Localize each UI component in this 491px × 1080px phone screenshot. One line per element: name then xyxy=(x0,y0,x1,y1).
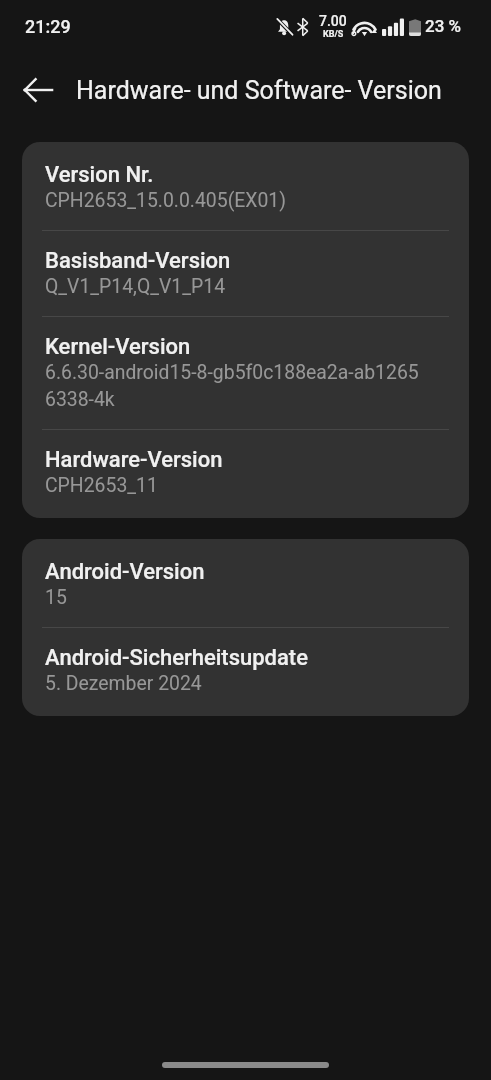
button[interactable]: Back xyxy=(10,62,66,118)
staticText: Android-Sicherheitsupdate xyxy=(45,645,308,671)
staticText: Hardware- und Software- Version xyxy=(76,76,442,105)
button[interactable]: Version Nr. xyxy=(22,145,469,231)
staticText: 23 % xyxy=(425,16,462,36)
staticText: Hardware-Version xyxy=(45,447,223,473)
staticText: KB/S xyxy=(323,29,344,40)
button[interactable]: Basisband-Version xyxy=(22,231,469,317)
staticText: 6.6.30-android15-8-gb5f0c188ea2a-ab1265 … xyxy=(45,361,419,411)
staticText: Version Nr. xyxy=(45,162,154,188)
staticText: Android-Version xyxy=(45,559,205,585)
button[interactable]: Kernel-Version xyxy=(22,317,469,430)
button[interactable]: Android-Version xyxy=(22,542,469,628)
staticText: 15 xyxy=(45,586,67,609)
button[interactable]: Hardware-Version xyxy=(22,430,469,515)
staticText: 5. Dezember 2024 xyxy=(45,672,202,695)
staticText: Basisband-Version xyxy=(45,248,231,274)
staticText: 7.00 xyxy=(319,13,347,29)
staticText: CPH2653_11 xyxy=(45,474,158,497)
button[interactable]: Android-Sicherheitsupdate xyxy=(22,628,469,713)
staticText: Q_V1_P14,Q_V1_P14 xyxy=(45,275,226,298)
staticText: 21:29 xyxy=(25,16,71,37)
staticText: Kernel-Version xyxy=(45,334,191,360)
staticText: CPH2653_15.0.0.405(EX01) xyxy=(45,189,287,212)
